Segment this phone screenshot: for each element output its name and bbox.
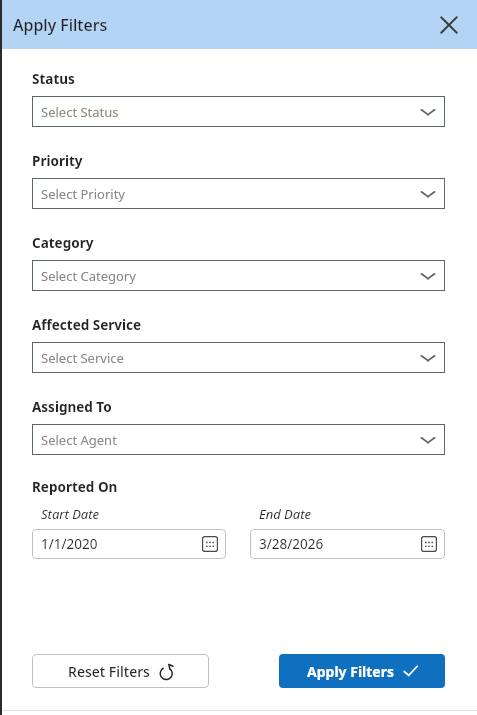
- button[interactable]: Select Priority: [32, 178, 445, 209]
- button[interactable]: Close: [433, 9, 465, 41]
- button[interactable]: 3/28/2026: [250, 529, 445, 559]
- staticText: Select Status: [41, 103, 417, 121]
- staticText: Select Service: [41, 349, 417, 367]
- staticText: End Date: [259, 505, 311, 523]
- staticText: Select Agent: [41, 431, 417, 449]
- staticText: Start Date: [41, 505, 99, 523]
- staticText: Apply Filters: [13, 14, 433, 36]
- button[interactable]: Select Service: [32, 342, 445, 373]
- button[interactable]: Select Category: [32, 260, 445, 291]
- button[interactable]: 1/1/2020: [32, 529, 226, 559]
- staticText: Select Priority: [41, 185, 417, 203]
- staticText: Status: [32, 70, 75, 88]
- other: Open calendar: [420, 535, 438, 553]
- staticText: 1/1/2020: [41, 535, 201, 553]
- staticText: Assigned To: [32, 398, 112, 416]
- button[interactable]: Reset Filters: [32, 654, 209, 688]
- other: Open calendar: [201, 535, 219, 553]
- staticText: Affected Service: [32, 316, 142, 334]
- button[interactable]: Select Status: [32, 96, 445, 127]
- staticText: Select Category: [41, 267, 417, 285]
- staticText: Apply Filters: [307, 662, 394, 681]
- button[interactable]: Select Agent: [32, 424, 445, 455]
- staticText: Category: [32, 234, 94, 252]
- staticText: Reported On: [32, 478, 118, 496]
- button[interactable]: Apply Filters: [279, 654, 445, 688]
- staticText: 3/28/2026: [259, 535, 420, 553]
- staticText: Priority: [32, 152, 83, 170]
- staticText: Reset Filters: [68, 662, 150, 681]
